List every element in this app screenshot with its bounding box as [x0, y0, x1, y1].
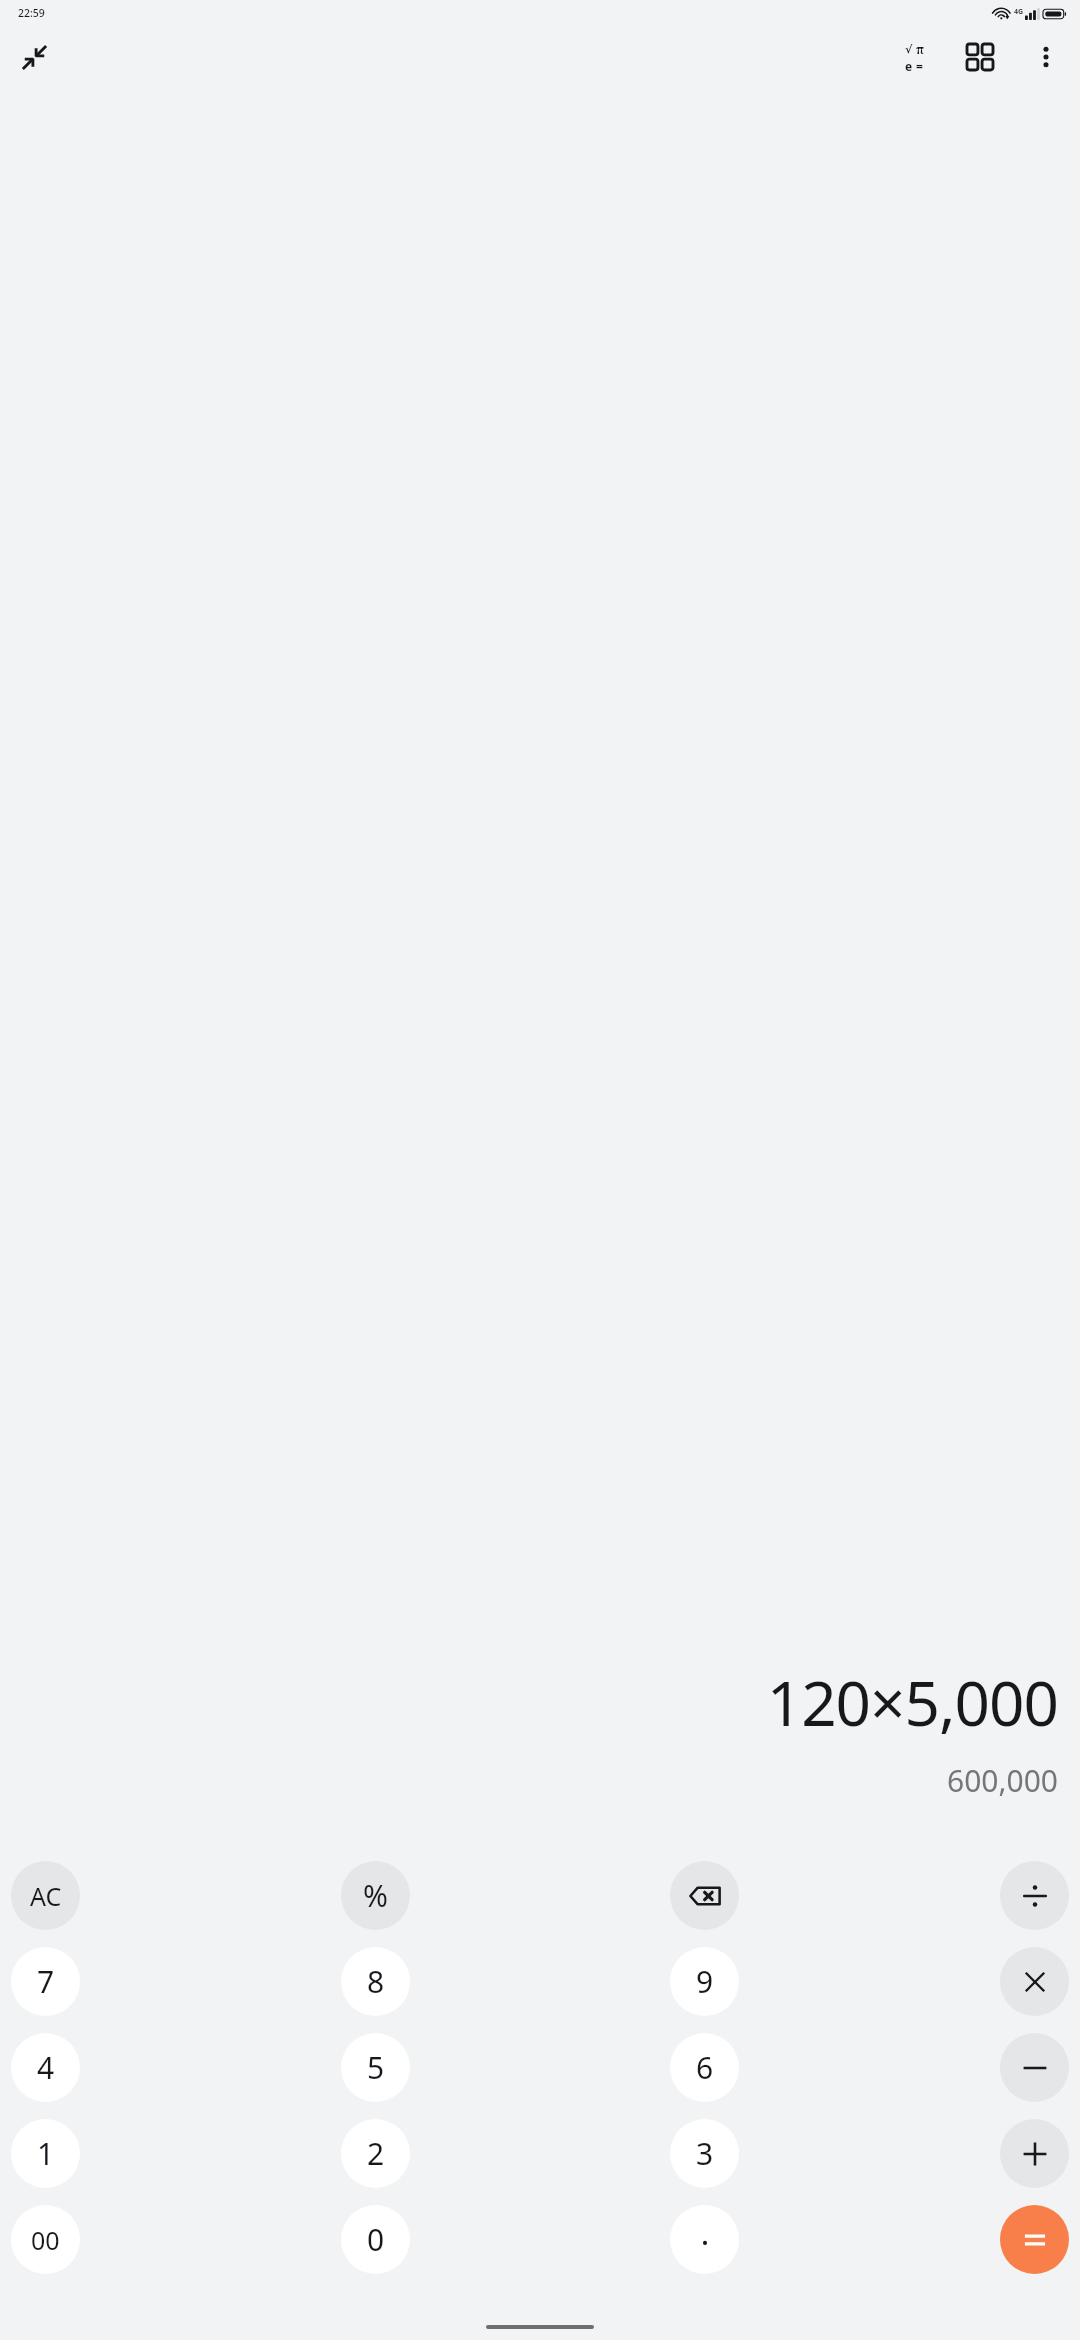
staticText: e	[905, 58, 913, 74]
button[interactable]: 2	[341, 2119, 410, 2188]
staticText: 0	[367, 2219, 385, 2260]
staticText: %	[363, 1875, 388, 1916]
staticText: 00	[31, 2223, 60, 2257]
button[interactable]	[1000, 2033, 1069, 2102]
button[interactable]: 9	[670, 1947, 739, 2016]
staticText: AC	[30, 1879, 62, 1913]
button[interactable]	[1000, 2205, 1069, 2274]
staticText: 600,000	[947, 1760, 1058, 1801]
button[interactable]: Collapse	[8, 31, 60, 83]
staticText: 5	[367, 2047, 385, 2088]
button[interactable]: Delete	[670, 1861, 739, 1930]
button[interactable]: AC	[11, 1861, 80, 1930]
button[interactable]: 6	[670, 2033, 739, 2102]
staticText: √	[905, 43, 913, 56]
staticText: 8	[367, 1961, 385, 2002]
button[interactable]: 8	[341, 1947, 410, 2016]
staticText: 4G	[1014, 7, 1024, 17]
button[interactable]: Scientific mode	[888, 31, 940, 83]
staticText: 120×5,000	[766, 1660, 1058, 1744]
button[interactable]: 0	[341, 2205, 410, 2274]
button[interactable]: 00	[11, 2205, 80, 2274]
button[interactable]	[1000, 1947, 1069, 2016]
button[interactable]: Converter	[954, 31, 1006, 83]
staticText: 7	[37, 1961, 55, 2002]
staticText: 2	[367, 2133, 385, 2174]
button[interactable]: 7	[11, 1947, 80, 2016]
staticText: 22:59	[18, 6, 45, 20]
staticText: π	[916, 41, 924, 57]
button[interactable]: More options	[1020, 31, 1072, 83]
button[interactable]: 4	[11, 2033, 80, 2102]
staticText: =	[916, 58, 923, 74]
button[interactable]	[1000, 1861, 1069, 1930]
staticText: 4	[37, 2047, 55, 2088]
staticText: 3	[696, 2133, 714, 2174]
button[interactable]: %	[341, 1861, 410, 1930]
button[interactable]	[670, 2205, 739, 2274]
button[interactable]: 3	[670, 2119, 739, 2188]
staticText: 6	[696, 2047, 714, 2088]
button[interactable]: 1	[11, 2119, 80, 2188]
button[interactable]	[1000, 2119, 1069, 2188]
button[interactable]: 5	[341, 2033, 410, 2102]
staticText: 9	[696, 1961, 714, 2002]
staticText: 1	[37, 2133, 55, 2174]
